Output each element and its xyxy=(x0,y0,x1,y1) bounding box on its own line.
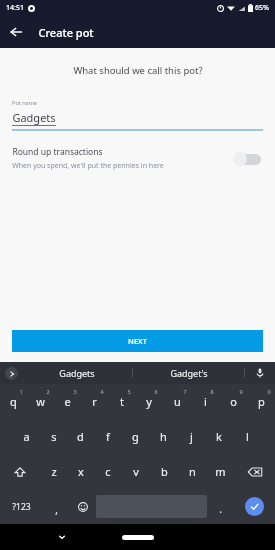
staticText: a xyxy=(23,429,30,444)
button[interactable]: Back xyxy=(0,16,32,48)
staticText: NEXT xyxy=(128,336,147,346)
staticText: g xyxy=(132,429,139,444)
staticText: t xyxy=(120,394,124,409)
staticText: Gadgets xyxy=(59,367,95,379)
button[interactable]: y xyxy=(135,384,163,419)
staticText: m xyxy=(215,464,226,479)
button[interactable]: ?123 xyxy=(0,489,43,524)
staticText: f xyxy=(106,429,110,444)
staticText: 7 xyxy=(183,388,187,395)
button[interactable]: k xyxy=(205,419,233,454)
button[interactable]: i xyxy=(191,384,219,419)
button[interactable]: Backspace xyxy=(234,454,275,489)
staticText: v xyxy=(133,464,139,479)
button[interactable]: g xyxy=(121,419,149,454)
button[interactable]: h xyxy=(149,419,177,454)
button[interactable]: Gadgets xyxy=(22,362,132,384)
staticText: x xyxy=(78,464,84,479)
button[interactable]: p xyxy=(247,384,275,419)
staticText: i xyxy=(204,394,207,409)
button[interactable]: Emoji xyxy=(70,489,96,524)
staticText: 14:51 xyxy=(6,3,24,13)
button[interactable]: NEXT xyxy=(12,330,263,352)
staticText: 8 xyxy=(210,388,214,395)
staticText: p xyxy=(258,394,265,409)
staticText: 4 xyxy=(100,388,104,395)
staticText: e xyxy=(64,394,71,409)
staticText: 1 xyxy=(19,388,23,395)
button[interactable]: Home xyxy=(122,535,154,540)
button[interactable]: r xyxy=(81,384,108,419)
staticText: j xyxy=(190,429,193,444)
staticText: s xyxy=(51,429,57,444)
button[interactable]: c xyxy=(94,454,122,489)
staticText: 5 xyxy=(127,388,131,395)
button[interactable]: u xyxy=(163,384,191,419)
button[interactable]: j xyxy=(177,419,205,454)
button[interactable]: f xyxy=(94,419,121,454)
button[interactable]: , xyxy=(43,489,70,524)
button[interactable]: w xyxy=(27,384,54,419)
button[interactable]: q xyxy=(0,384,27,419)
staticText: o xyxy=(230,394,237,409)
button[interactable]: Hide keyboard xyxy=(52,527,72,547)
button[interactable]: v xyxy=(122,454,150,489)
button[interactable]: s xyxy=(40,419,67,454)
staticText: z xyxy=(51,464,57,479)
staticText: u xyxy=(174,394,181,409)
staticText: Create pot xyxy=(38,25,94,40)
staticText: y xyxy=(146,394,152,409)
staticText: 9 xyxy=(239,388,243,395)
button[interactable]: Round up transactions xyxy=(0,143,275,174)
button[interactable]: . xyxy=(207,489,233,524)
staticText: Gadgets xyxy=(12,110,56,125)
staticText: 2 xyxy=(46,388,50,395)
staticText: h xyxy=(160,429,167,444)
button[interactable]: z xyxy=(40,454,67,489)
button[interactable]: Done xyxy=(233,489,275,524)
staticText: l xyxy=(246,429,249,444)
button[interactable]: b xyxy=(150,454,178,489)
button[interactable]: Shift xyxy=(0,454,40,489)
button[interactable]: t xyxy=(108,384,135,419)
staticText: Gadget's xyxy=(170,367,208,379)
staticText: 65% xyxy=(255,3,269,13)
staticText: d xyxy=(77,429,84,444)
staticText: Round up transactions xyxy=(12,146,103,158)
staticText: 6 xyxy=(154,388,158,395)
staticText: Pot name xyxy=(12,99,37,106)
staticText: When you spend, we'll put the pennies in… xyxy=(12,161,164,171)
staticText: n xyxy=(189,464,196,479)
button[interactable]: d xyxy=(67,419,94,454)
staticText: . xyxy=(219,502,222,516)
staticText: 0 xyxy=(267,388,271,395)
staticText: b xyxy=(161,464,168,479)
staticText: What should we call this pot? xyxy=(73,64,203,77)
button[interactable]: x xyxy=(67,454,94,489)
staticText: k xyxy=(216,429,222,444)
button[interactable]: More suggestions xyxy=(0,362,22,384)
button[interactable]: Gadget's xyxy=(133,362,244,384)
staticText: q xyxy=(10,394,17,409)
staticText: ?123 xyxy=(12,501,31,513)
button[interactable]: n xyxy=(178,454,206,489)
staticText: 3 xyxy=(73,388,77,395)
button[interactable]: Voice input xyxy=(245,362,275,384)
staticText: c xyxy=(105,464,111,479)
button[interactable]: l xyxy=(233,419,261,454)
staticText: , xyxy=(55,503,58,517)
button[interactable]: e xyxy=(54,384,81,419)
staticText: w xyxy=(36,394,45,409)
staticText: r xyxy=(92,394,97,409)
button[interactable]: m xyxy=(206,454,234,489)
button[interactable]: o xyxy=(219,384,247,419)
button[interactable]: a xyxy=(13,419,40,454)
